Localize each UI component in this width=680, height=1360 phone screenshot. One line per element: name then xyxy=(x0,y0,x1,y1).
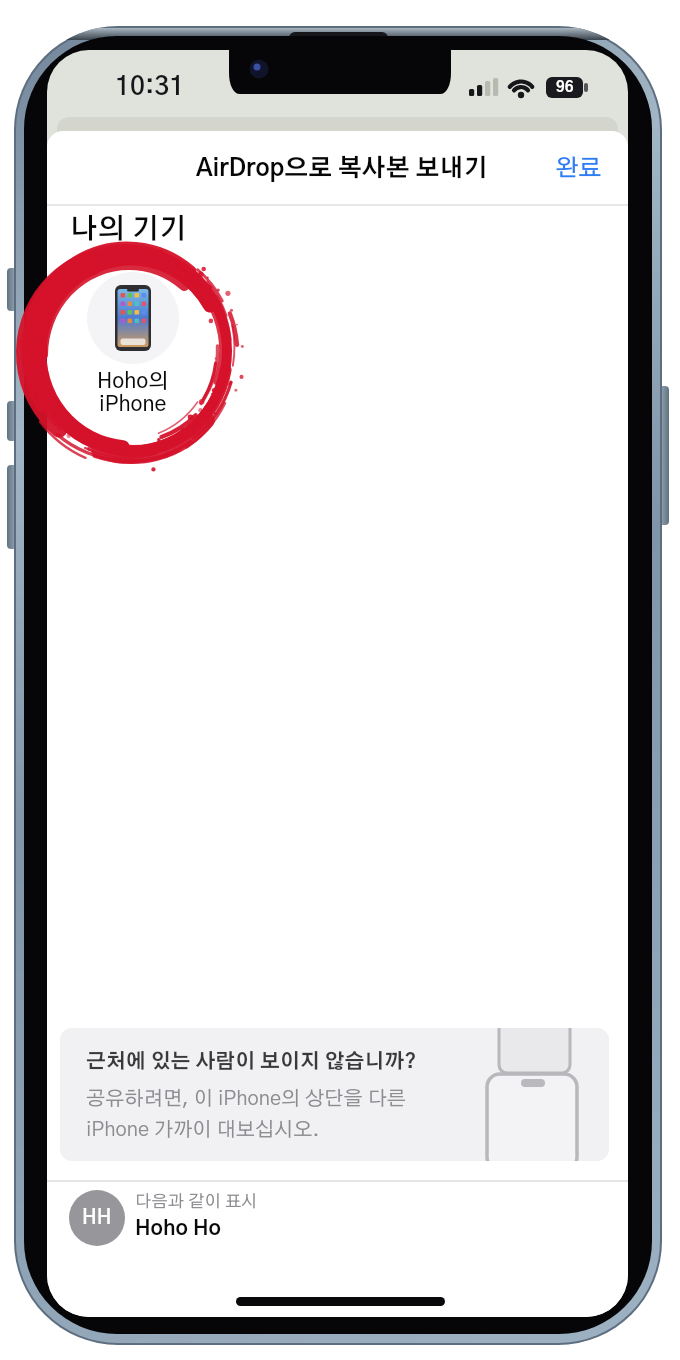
staticText: HH xyxy=(82,1208,112,1228)
staticText: 10:31 xyxy=(115,74,185,100)
staticText: 완료 xyxy=(555,157,602,181)
button[interactable]: HH xyxy=(47,1186,467,1252)
staticText: Hoho Ho xyxy=(135,1218,221,1239)
staticText: iPhone xyxy=(99,394,167,415)
staticText: 나의 기기 xyxy=(70,216,188,244)
staticText: 공유하려면, 이 iPhone의 상단을 다른 xyxy=(86,1089,407,1109)
staticText: Hoho의 xyxy=(97,371,169,392)
button[interactable]: 완료 xyxy=(543,150,613,188)
staticText: AirDrop으로 복사본 보내기 xyxy=(196,157,488,181)
staticText: iPhone 가까이 대보십시오. xyxy=(86,1120,320,1140)
button[interactable] xyxy=(87,272,179,364)
staticText: 96 xyxy=(556,80,574,95)
staticText: 근처에 있는 사람이 보이지 않습니까? xyxy=(86,1052,417,1072)
staticText: 다음과 같이 표시 xyxy=(135,1193,258,1210)
button[interactable]: 근처에 있는 사람이 보이지 않습니까? xyxy=(60,1028,609,1161)
